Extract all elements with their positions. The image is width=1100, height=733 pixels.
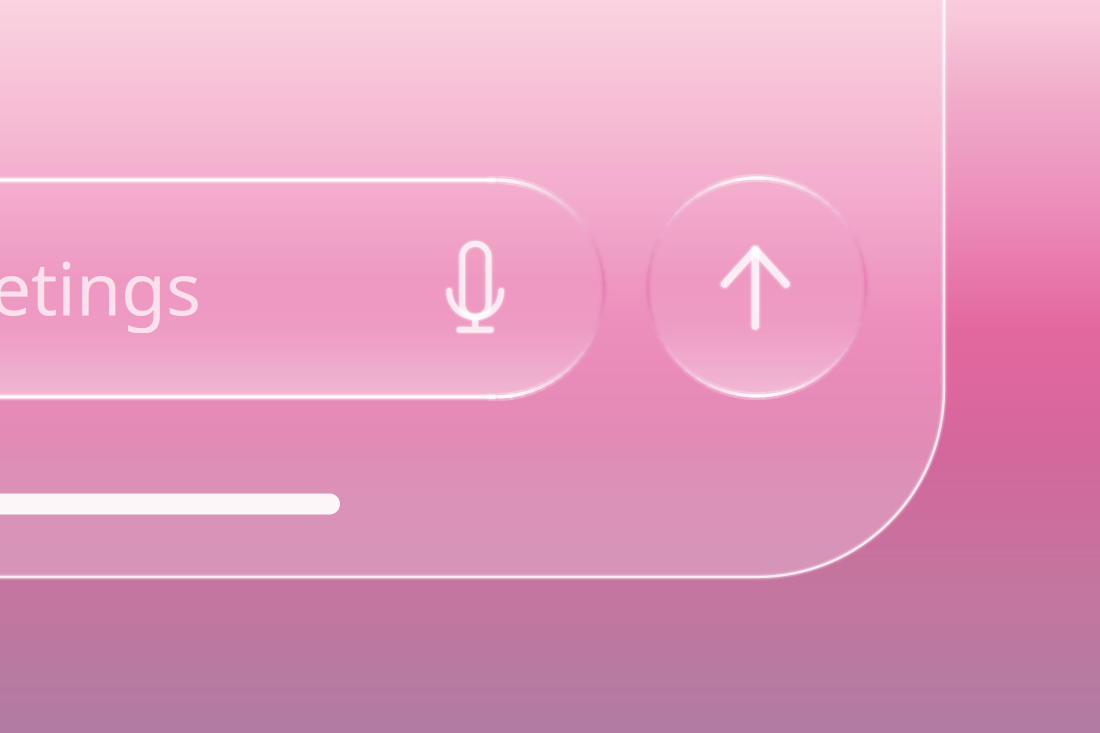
button[interactable]: Send — [0, 0, 1100, 733]
button[interactable]: Dictate — [0, 0, 1100, 733]
staticText: Greetings — [0, 238, 201, 336]
